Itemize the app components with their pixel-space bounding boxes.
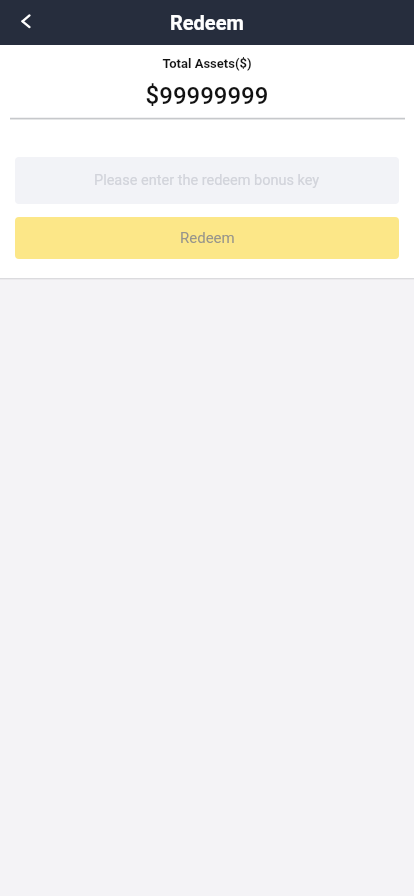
button[interactable]: Back <box>0 0 45 45</box>
staticText: $99999999 <box>0 82 414 110</box>
button[interactable]: Redeem <box>15 217 399 259</box>
button[interactable]: Please enter the redeem bonus key <box>15 157 399 204</box>
staticText: Total Assets($) <box>0 56 414 71</box>
staticText: Redeem <box>170 11 244 34</box>
staticText: Redeem <box>180 229 235 247</box>
staticText: Please enter the redeem bonus key <box>94 172 320 189</box>
